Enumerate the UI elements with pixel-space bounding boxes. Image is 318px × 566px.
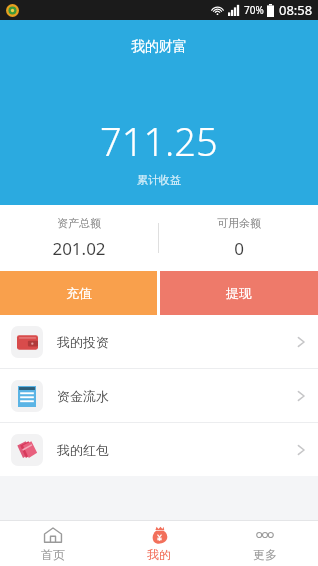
staticText: 资产总额 <box>57 216 101 230</box>
staticText: 711.25 <box>100 115 218 167</box>
staticText: 我的 <box>147 547 171 562</box>
staticText: 累计收益 <box>137 173 181 187</box>
staticText: 更多 <box>253 547 277 562</box>
button[interactable]: 资产总额 <box>0 216 158 260</box>
button[interactable]: 充值 <box>0 271 157 315</box>
button[interactable]: 提现 <box>160 271 318 315</box>
button[interactable]: 更多 <box>212 521 318 566</box>
staticText: 提现 <box>226 285 252 301</box>
button[interactable]: 可用余额 <box>159 216 318 260</box>
button[interactable]: 首页 <box>0 521 106 566</box>
button[interactable]: 我的 <box>106 521 212 566</box>
staticText: 我的红包 <box>57 442 109 458</box>
staticText: 70% <box>244 3 264 17</box>
button[interactable]: 我的红包 <box>0 423 318 476</box>
staticText: 08:58 <box>279 1 313 19</box>
staticText: 0 <box>234 237 244 260</box>
staticText: 首页 <box>41 547 65 562</box>
staticText: 可用余额 <box>217 216 261 230</box>
staticText: 资金流水 <box>57 388 109 404</box>
button[interactable]: 资金流水 <box>0 369 318 422</box>
staticText: 我的投资 <box>57 334 109 350</box>
staticText: 201.02 <box>52 237 106 260</box>
button[interactable]: 我的投资 <box>0 315 318 368</box>
staticText: 我的财富 <box>131 38 187 56</box>
staticText: 充值 <box>66 285 92 301</box>
